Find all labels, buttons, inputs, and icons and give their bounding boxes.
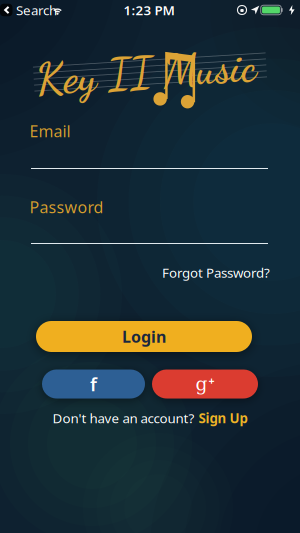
- staticText: 1:23 PM: [123, 1, 174, 19]
- button[interactable]: Sign Up: [198, 409, 247, 427]
- button[interactable]: Back to Search: [0, 1, 57, 19]
- button[interactable]: Forgot Password?: [162, 264, 270, 281]
- button[interactable]: Sign in with Facebook: [42, 369, 145, 398]
- button[interactable]: Login: [36, 321, 252, 352]
- staticText: +: [208, 373, 214, 388]
- staticText: f: [90, 372, 97, 396]
- staticText: Search: [16, 1, 57, 19]
- staticText: Don't have an account?: [52, 409, 194, 427]
- staticText: Email: [29, 120, 70, 142]
- staticText: Key II Music: [35, 46, 256, 99]
- staticText: Password: [29, 196, 103, 218]
- staticText: Sign Up: [198, 409, 247, 427]
- button[interactable]: Sign in with Google: [152, 369, 258, 398]
- staticText: g: [195, 373, 207, 395]
- staticText: Login: [122, 326, 166, 347]
- staticText: Forgot Password?: [162, 264, 270, 281]
